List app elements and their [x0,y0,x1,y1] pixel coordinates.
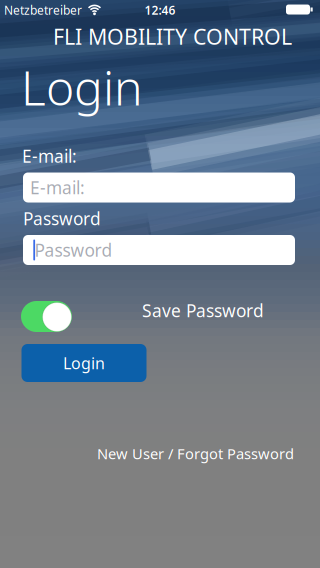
button[interactable]: Login [21,344,146,382]
staticText: Login [63,352,105,374]
staticText: Save Password [142,299,264,322]
button[interactable]: Save Password [21,301,72,332]
staticText: Netzbetreiber [4,2,82,18]
staticText: New User / Forgot Password [97,444,294,463]
staticText: E-mail: [30,176,85,199]
staticText: Login [21,55,143,119]
staticText: FLI MOBILITY CONTROL [53,22,292,51]
staticText: Password [23,207,101,230]
staticText: E-mail: [22,144,77,167]
staticText: 12:46 [144,2,175,18]
staticText: Password [34,238,112,261]
button[interactable]: New User / Forgot Password [97,444,294,463]
